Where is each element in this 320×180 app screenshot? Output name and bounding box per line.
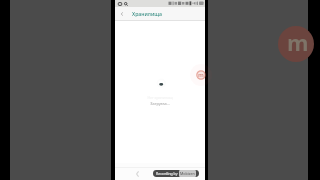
staticText: Нет хранилищ — [147, 95, 173, 100]
staticText: Загрузка… — [150, 101, 170, 106]
staticText: m — [287, 27, 309, 57]
staticText: Recording by — [156, 171, 178, 176]
button[interactable]: Back — [133, 169, 142, 178]
staticText: m — [198, 71, 204, 79]
staticText: Хранилища — [132, 10, 162, 17]
staticText: Mobizen — [180, 171, 195, 176]
button[interactable]: Screen recorder — [189, 63, 213, 87]
button[interactable]: Back — [118, 10, 126, 18]
